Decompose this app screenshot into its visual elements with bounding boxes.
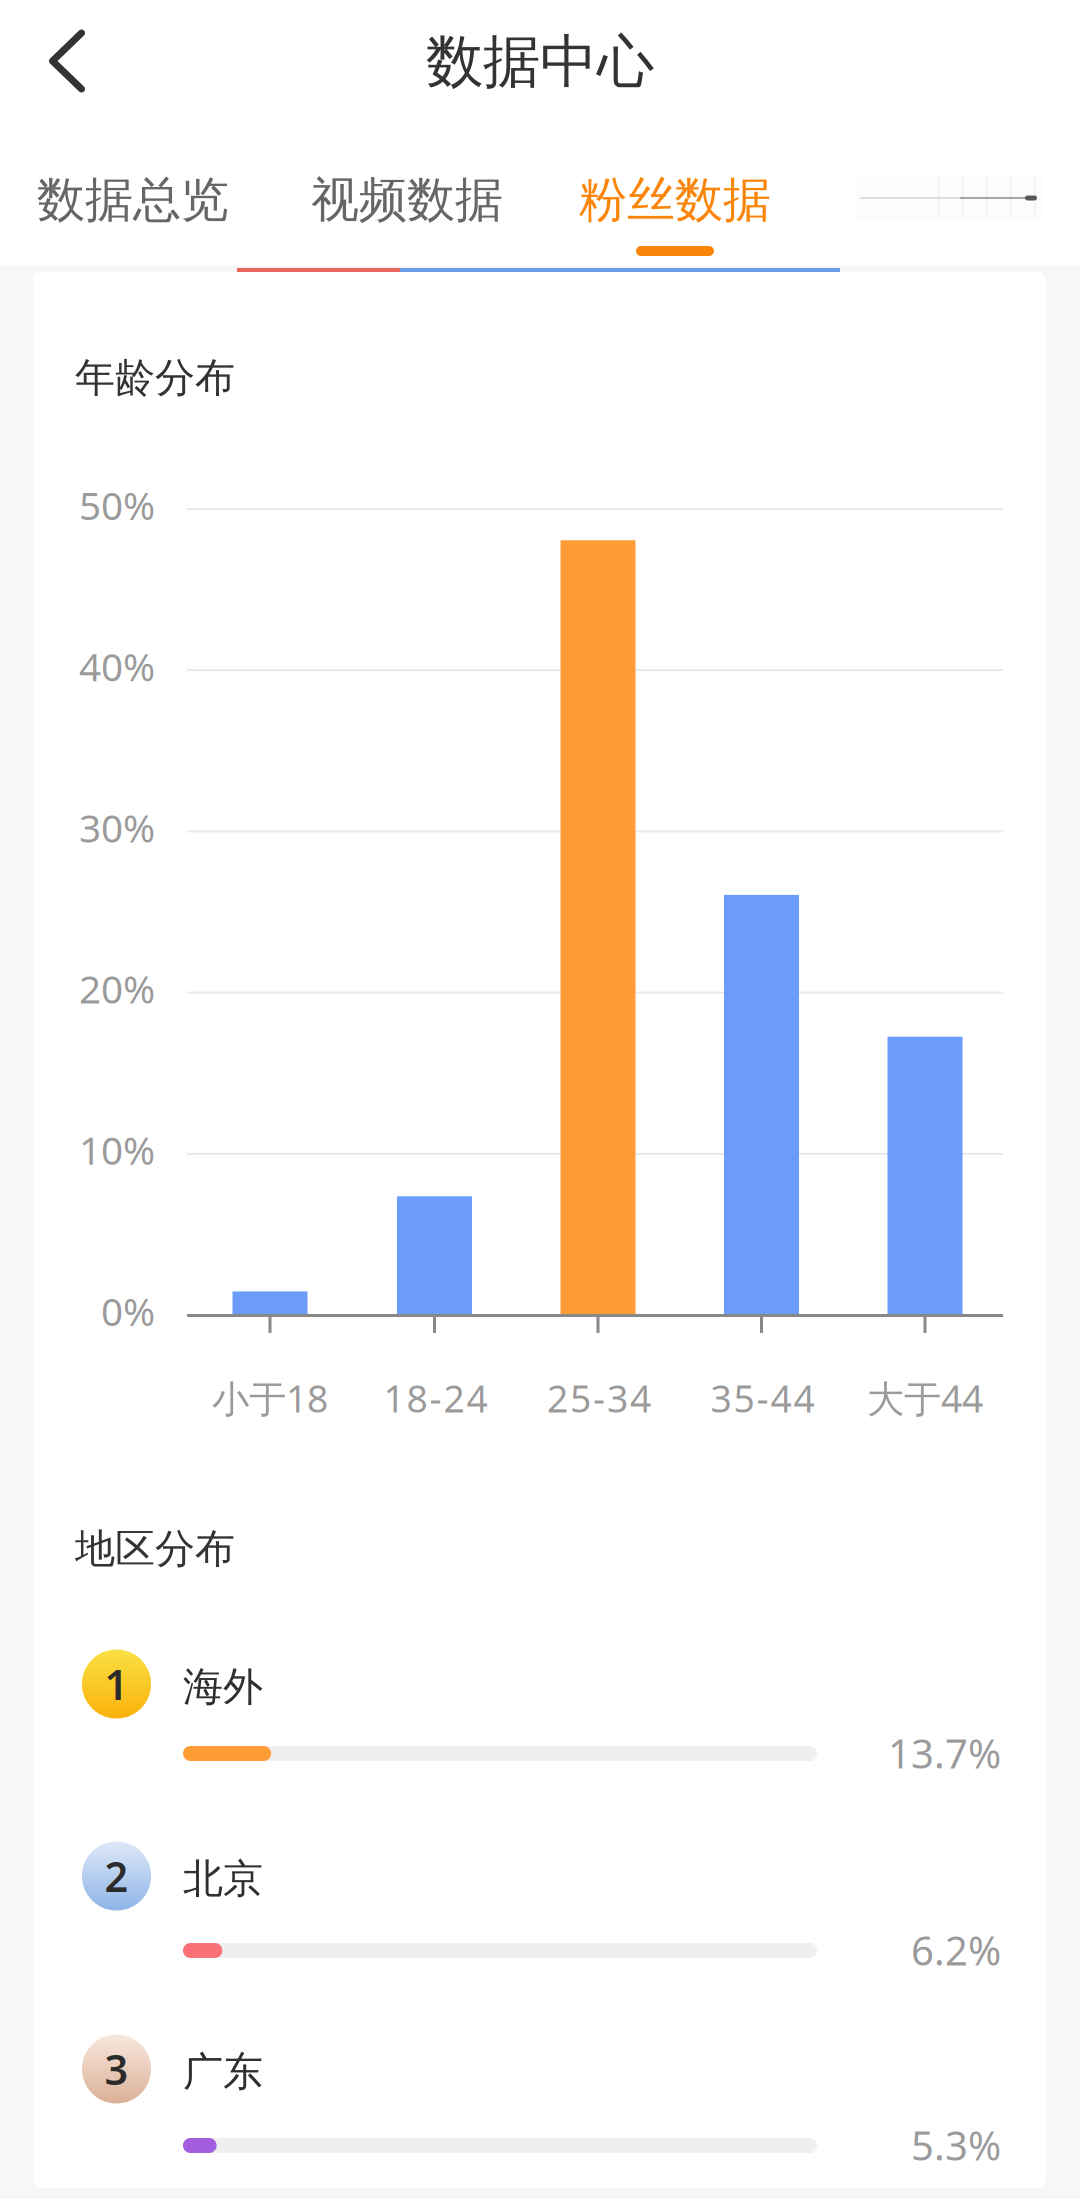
- staticText: 海外: [183, 1662, 263, 1711]
- staticText: 18-24: [383, 1373, 487, 1423]
- staticText: 20%: [79, 963, 155, 1014]
- staticText: 数据中心: [426, 27, 654, 97]
- staticText: 地区分布: [75, 1524, 235, 1573]
- staticText: 广东: [183, 2047, 263, 2096]
- staticText: 视频数据: [311, 170, 503, 229]
- staticText: 35-44: [710, 1373, 814, 1423]
- staticText: 小于18: [212, 1373, 328, 1423]
- staticText: 5.3%: [911, 2118, 1001, 2171]
- staticText: 50%: [79, 479, 155, 531]
- staticText: 粉丝数据: [579, 170, 771, 229]
- staticText: 数据总览: [37, 170, 229, 229]
- staticText: 大于44: [867, 1373, 983, 1423]
- button[interactable]: 数据总览: [0, 0, 1080, 266]
- button[interactable]: 粉丝数据: [0, 0, 1080, 266]
- staticText: 年龄分布: [75, 353, 235, 402]
- staticText: 30%: [79, 802, 155, 853]
- staticText: 13.7%: [888, 1726, 1001, 1779]
- staticText: 40%: [79, 640, 155, 692]
- staticText: 6.2%: [911, 1923, 1001, 1976]
- staticText: 1: [104, 1657, 128, 1711]
- staticText: 10%: [79, 1124, 155, 1175]
- staticText: 0%: [101, 1285, 155, 1337]
- button[interactable]: 视频数据: [0, 0, 1080, 266]
- staticText: 3: [104, 2042, 128, 2096]
- button[interactable]: Back: [0, 0, 134, 122]
- staticText: 2: [104, 1849, 128, 1903]
- staticText: 北京: [183, 1854, 263, 1903]
- staticText: 25-34: [547, 1373, 651, 1423]
